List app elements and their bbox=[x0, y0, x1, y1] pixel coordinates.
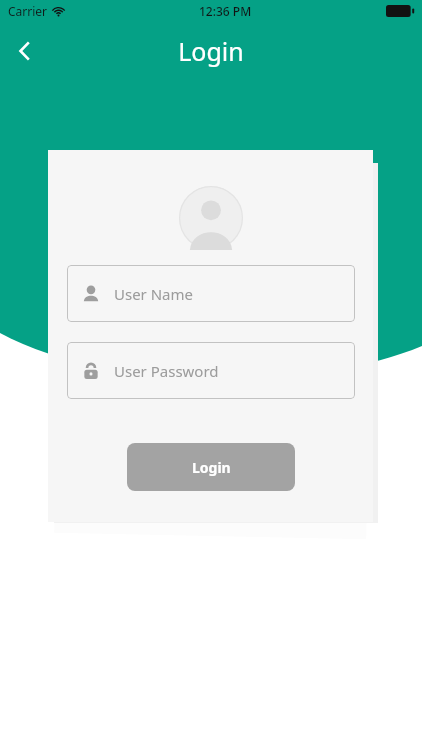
button[interactable]: Back bbox=[2, 28, 48, 74]
staticText: Login bbox=[178, 34, 244, 68]
staticText: 12:36 PM bbox=[199, 3, 252, 19]
button[interactable]: Login bbox=[127, 443, 295, 491]
staticText: Carrier bbox=[8, 3, 48, 19]
button[interactable]: User Name bbox=[67, 265, 355, 322]
button[interactable]: User Password bbox=[67, 342, 355, 399]
staticText: User Name bbox=[114, 284, 194, 304]
staticText: User Password bbox=[114, 361, 219, 381]
staticText: Login bbox=[192, 458, 231, 477]
